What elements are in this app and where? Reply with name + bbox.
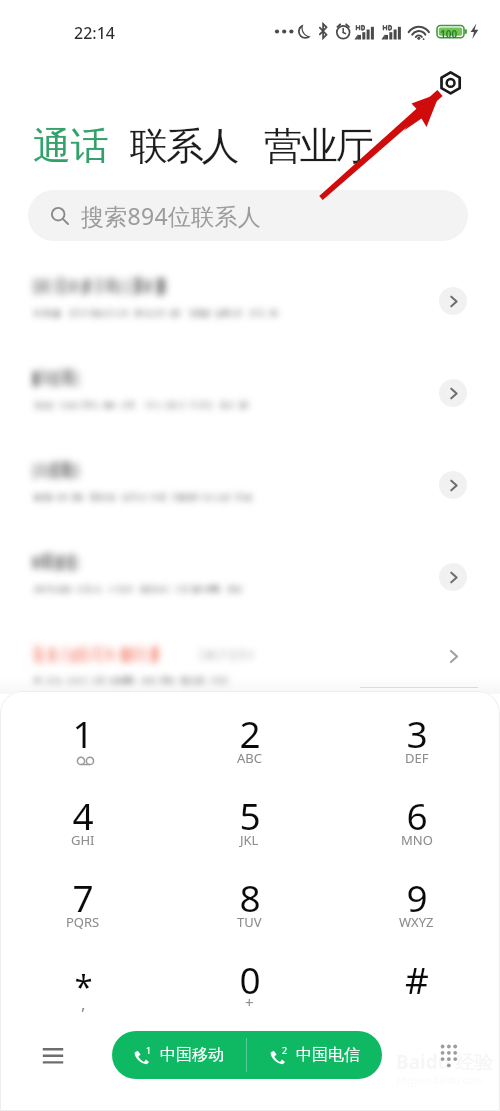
staticText: 中国移动 [160,1045,224,1065]
staticText: 3 [406,708,428,758]
staticText: 中国电信 [296,1045,360,1065]
button[interactable]: * [0,937,166,1019]
button[interactable]: 营业厅 [264,122,372,170]
button[interactable]: Settings [434,66,468,100]
staticText: + [245,992,254,1012]
staticText: 4 [72,790,94,840]
staticText: 8 [239,872,261,922]
staticText: 0 [239,954,261,1004]
staticText: 22:14 [74,22,115,44]
staticText: 6 [406,790,428,840]
button[interactable]: 6 [333,773,500,855]
staticText: * [74,964,93,1009]
button[interactable]: 2 [247,1031,382,1079]
button[interactable] [0,533,500,625]
button[interactable]: # [333,937,500,1019]
button[interactable]: Dialpad [429,1027,469,1067]
button[interactable] [0,257,500,349]
button[interactable]: 2 [166,691,333,773]
staticText: 100 [440,27,458,41]
button[interactable] [0,626,500,718]
button[interactable]: 联系人 [130,122,238,170]
staticText: # [405,954,429,1004]
button[interactable]: 7 [0,855,166,937]
staticText: 2 [282,1044,288,1056]
button[interactable]: Menu [32,1035,74,1077]
button[interactable]: 1 [112,1031,246,1079]
button[interactable] [0,349,500,441]
staticText: 9 [406,872,428,922]
staticText: MNO [401,831,433,849]
staticText: DEF [405,749,429,767]
button[interactable] [0,441,500,533]
staticText: 1 [72,708,94,758]
staticText: 2 [239,708,261,758]
staticText: TUV [237,913,262,931]
button[interactable]: 1 [0,691,166,773]
button[interactable]: 5 [166,773,333,855]
button[interactable]: 8 [166,855,333,937]
staticText: Baidu 经验 [396,1049,493,1075]
staticText: PQRS [66,913,100,931]
staticText: GHI [71,831,95,849]
staticText: 1 [146,1044,152,1056]
staticText: 7 [72,872,94,922]
button[interactable]: 3 [333,691,500,773]
staticText: JKL [240,831,259,849]
staticText: ABC [237,749,262,767]
staticText: 5 [239,790,261,840]
staticText: 搜索894位联系人 [81,200,262,231]
staticText: , [81,992,86,1015]
button[interactable]: 通话 [33,122,109,170]
button[interactable]: 9 [333,855,500,937]
button[interactable]: 搜索894位联系人 [28,190,468,241]
button[interactable]: 0 [166,937,333,1019]
staticText: WXYZ [399,913,434,931]
button[interactable]: 4 [0,773,166,855]
